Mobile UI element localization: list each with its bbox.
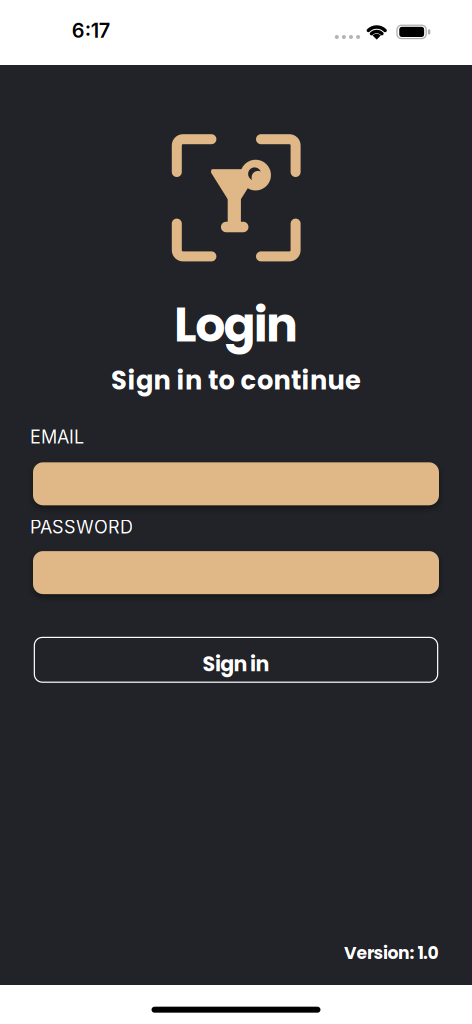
staticText: 6:17 (72, 18, 110, 42)
button[interactable]: Password (33, 551, 439, 594)
button[interactable]: Sign in (34, 637, 438, 683)
staticText: PASSWORD (30, 516, 133, 538)
staticText: Sign in to continue (111, 362, 361, 398)
staticText: EMAIL (30, 426, 84, 448)
staticText: Login (174, 292, 298, 358)
staticText: Sign in (203, 650, 269, 678)
staticText: Version: 1.0 (344, 941, 438, 965)
button[interactable]: Email (33, 462, 439, 505)
